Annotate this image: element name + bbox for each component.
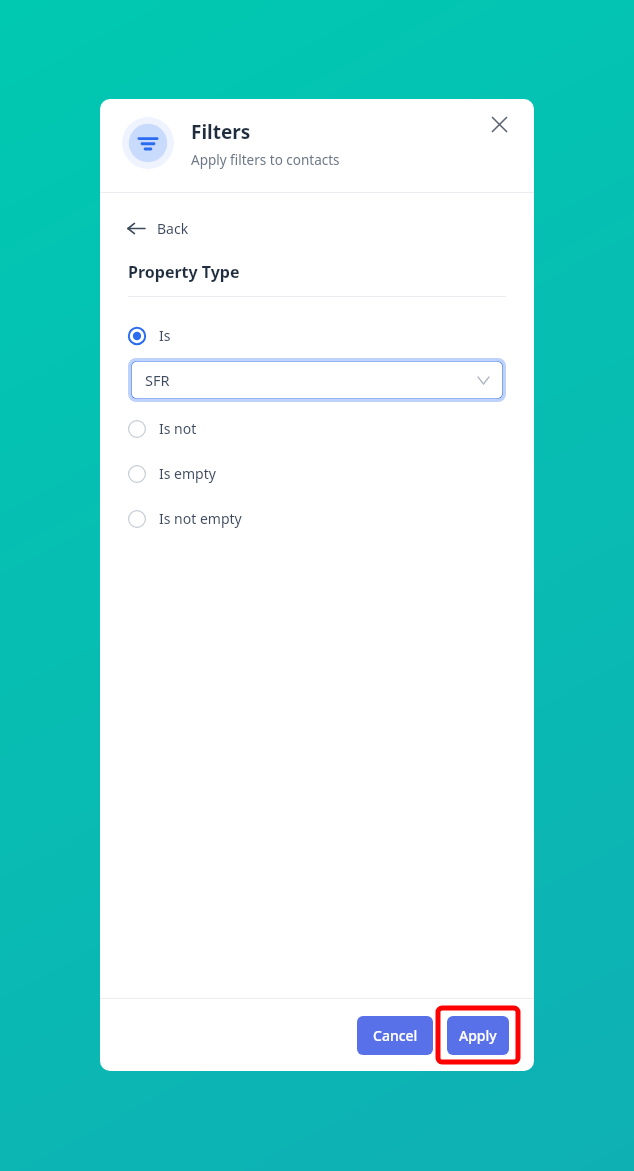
button[interactable]: Is (124, 323, 181, 348)
button[interactable]: Cancel (357, 1016, 433, 1055)
staticText: Is (159, 326, 171, 345)
staticText: Is not (159, 419, 197, 438)
button[interactable]: Back (124, 213, 193, 244)
button[interactable]: Is not (124, 416, 207, 441)
staticText: Cancel (373, 1026, 418, 1045)
staticText: Property Type (128, 261, 240, 283)
staticText: Is not empty (159, 509, 242, 528)
button[interactable]: SFR (131, 361, 503, 399)
button[interactable]: Close (482, 107, 516, 141)
staticText: Is empty (159, 464, 216, 483)
staticText: SFR (145, 370, 170, 390)
button[interactable]: Is empty (124, 461, 226, 486)
staticText: Filters (191, 119, 251, 145)
staticText: Back (157, 219, 189, 238)
button[interactable]: Apply (447, 1016, 509, 1055)
staticText: Apply filters to contacts (191, 151, 340, 169)
staticText: Apply (459, 1026, 497, 1045)
button[interactable]: Is not empty (124, 506, 252, 531)
